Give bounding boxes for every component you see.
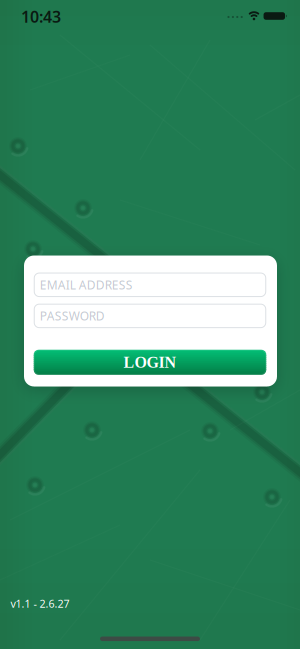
staticText: 10:43 <box>21 6 61 27</box>
staticText: v1.1 - 2.6.27 <box>10 596 69 611</box>
button[interactable]: EMAIL ADDRESS <box>34 273 266 297</box>
button[interactable]: LOGIN <box>34 350 266 375</box>
button[interactable]: PASSWORD <box>34 304 266 328</box>
staticText: EMAIL ADDRESS <box>40 277 133 293</box>
staticText: PASSWORD <box>40 308 105 324</box>
staticText: LOGIN <box>123 353 176 371</box>
